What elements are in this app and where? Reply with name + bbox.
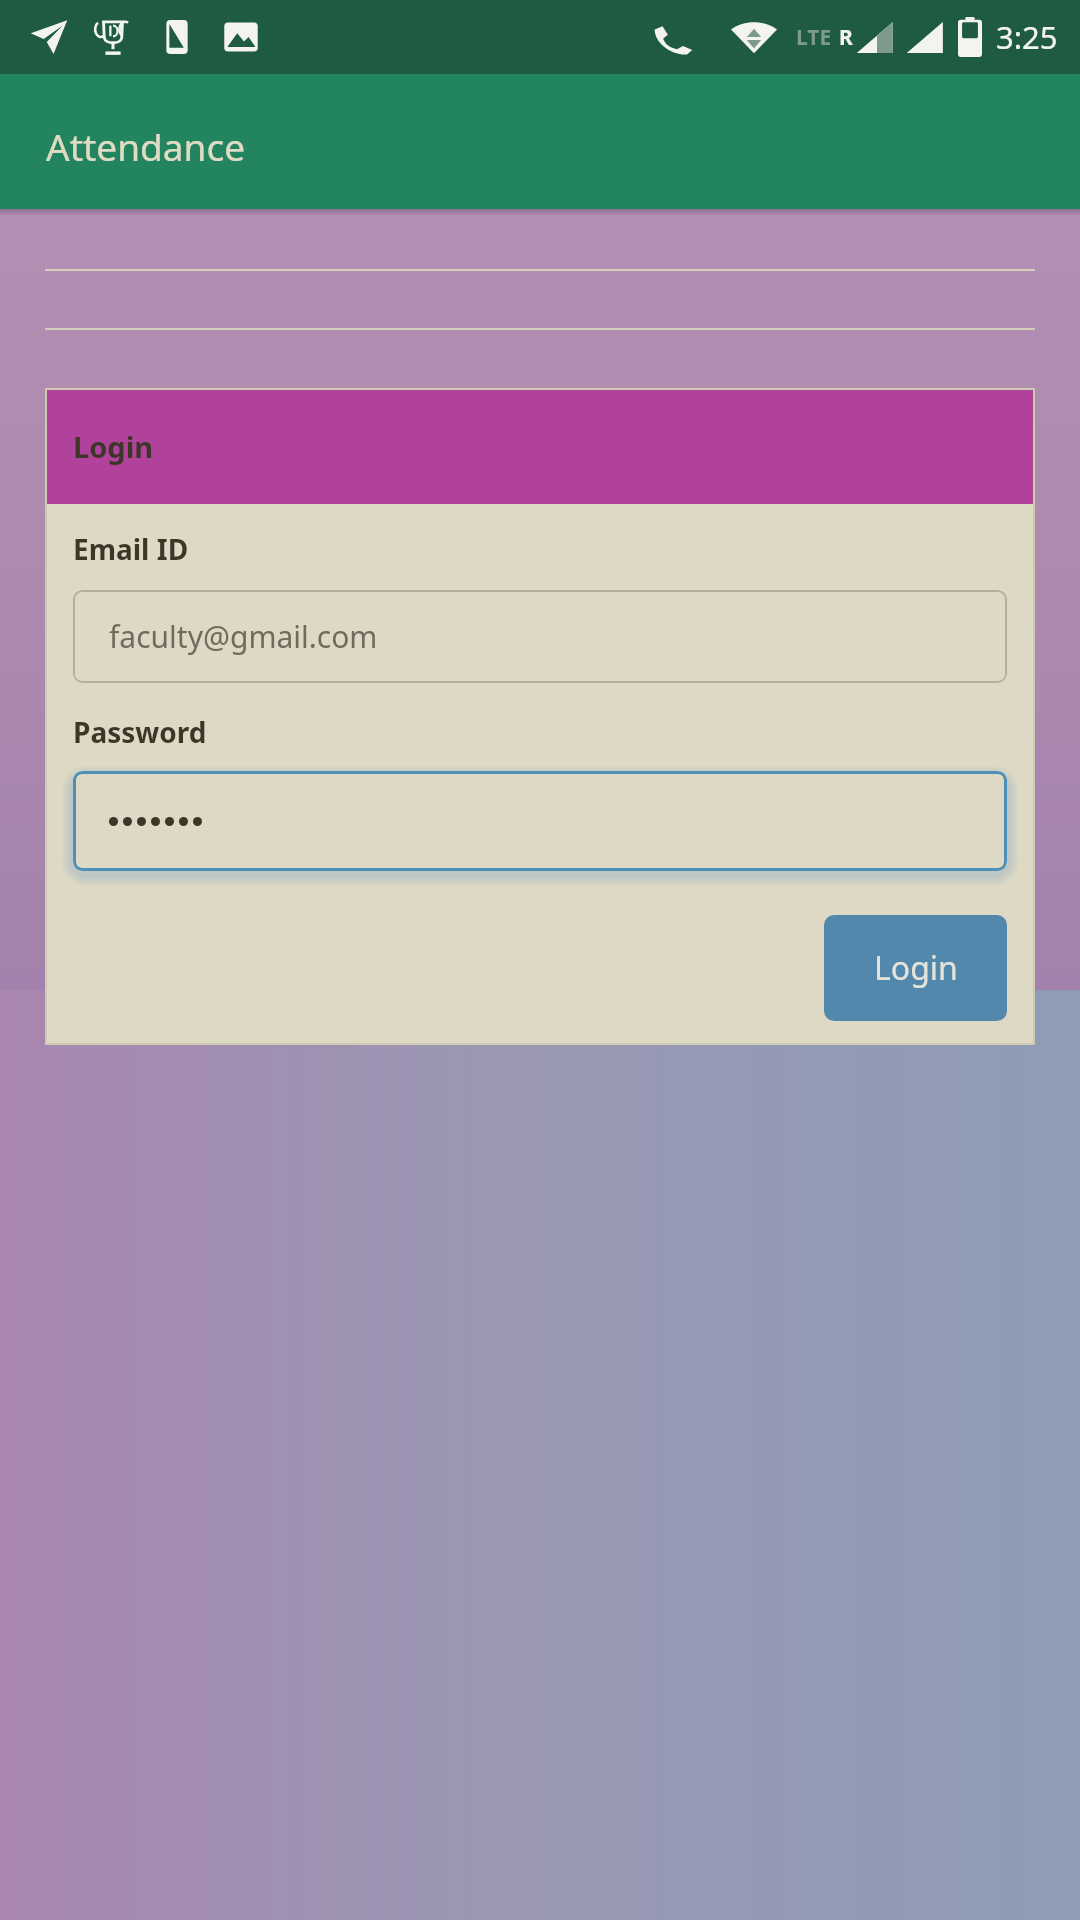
other: VoLTE bbox=[652, 18, 718, 56]
other: Wi-Fi bbox=[730, 18, 778, 56]
staticText: Attendance bbox=[46, 121, 246, 171]
staticText: Email ID bbox=[73, 530, 189, 568]
other: Signal bbox=[856, 20, 894, 54]
staticText: Password bbox=[73, 713, 207, 751]
other: Telegram bbox=[30, 18, 68, 56]
button[interactable]: Login bbox=[824, 915, 1007, 1021]
button[interactable] bbox=[73, 771, 1007, 871]
staticText: Login bbox=[874, 946, 958, 990]
other: Battery bbox=[958, 17, 982, 57]
staticText: 3:25 bbox=[996, 16, 1058, 58]
staticText: Login bbox=[73, 427, 154, 466]
staticText: faculty@gmail.com bbox=[109, 616, 378, 657]
button[interactable]: faculty@gmail.com bbox=[73, 590, 1007, 683]
button[interactable]: Login bbox=[45, 388, 1035, 504]
staticText: LTE bbox=[796, 23, 832, 52]
other: Photo bbox=[222, 18, 260, 56]
other: Screenshot bbox=[158, 18, 196, 56]
staticText: R bbox=[839, 23, 853, 52]
other: Trophy bbox=[94, 18, 132, 56]
other: Signal bbox=[906, 20, 944, 54]
